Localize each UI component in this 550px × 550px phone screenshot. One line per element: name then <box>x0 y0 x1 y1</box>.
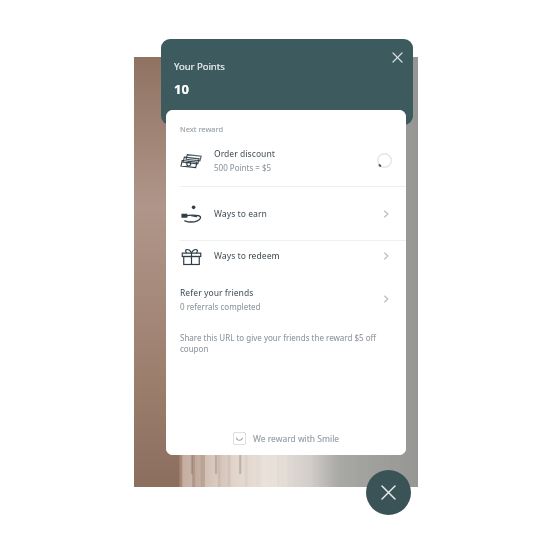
button[interactable]: Refer your friends <box>166 278 406 320</box>
button[interactable]: We reward with Smile <box>233 432 340 445</box>
staticText: Ways to earn <box>214 208 380 220</box>
staticText: 0 referrals completed <box>180 301 261 312</box>
button[interactable]: Order discount <box>166 134 406 186</box>
button[interactable]: Ways to earn <box>166 187 406 240</box>
button[interactable]: Ways to redeem <box>166 241 406 270</box>
staticText: We reward with Smile <box>253 433 340 445</box>
staticText: Share this URL to give your friends the … <box>180 332 380 355</box>
button[interactable]: Close <box>366 470 411 515</box>
staticText: Ways to redeem <box>214 250 380 262</box>
staticText: 500 Points = $5 <box>214 162 272 173</box>
staticText: Next reward <box>180 124 224 134</box>
staticText: Order discount <box>214 148 276 160</box>
button[interactable]: Close panel <box>387 47 407 67</box>
staticText: Refer your friends <box>180 287 254 299</box>
staticText: 10 <box>174 80 189 98</box>
staticText: Your Points <box>174 60 225 73</box>
